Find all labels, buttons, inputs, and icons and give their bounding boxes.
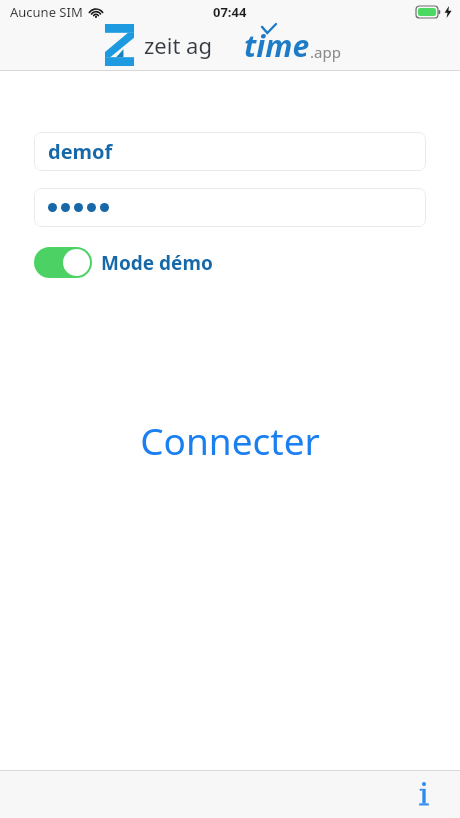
staticText: time (244, 25, 310, 66)
button[interactable]: Mode démo (34, 247, 92, 278)
staticText: 07:44 (213, 3, 247, 21)
button[interactable] (34, 188, 426, 227)
staticText: Mode démo (101, 250, 213, 276)
staticText: Aucune SIM (10, 3, 83, 21)
button[interactable]: Connecter (0, 414, 460, 466)
button[interactable]: Mode démo (34, 247, 213, 278)
button[interactable]: demof (34, 132, 426, 171)
staticText: Connecter (140, 415, 320, 465)
staticText: .app (310, 42, 341, 62)
staticText: zeit ag (144, 30, 212, 60)
button[interactable]: Informations (402, 772, 446, 816)
staticText: demof (48, 138, 113, 165)
